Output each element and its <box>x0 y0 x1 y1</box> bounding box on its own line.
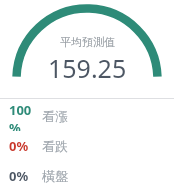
button[interactable]: 100% <box>0 101 174 131</box>
staticText: 0% <box>9 167 29 185</box>
staticText: 0% <box>9 137 29 155</box>
staticText: 看漲 <box>42 108 68 124</box>
button[interactable]: 0% <box>0 161 174 191</box>
other: Average forecast gauge <box>0 0 174 98</box>
staticText: 看跌 <box>42 138 68 154</box>
staticText: 100% <box>9 101 42 131</box>
staticText: 橫盤 <box>42 168 68 184</box>
staticText: 平均預測值 <box>60 35 115 49</box>
staticText: 159.25 <box>48 51 127 85</box>
button[interactable]: 0% <box>0 131 174 161</box>
